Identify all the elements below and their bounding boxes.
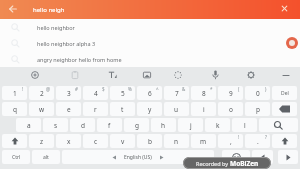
button[interactable]: j <box>178 118 203 132</box>
button[interactable]: 9 <box>218 86 243 100</box>
staticText: , <box>230 137 232 146</box>
staticText: x <box>67 137 71 146</box>
button[interactable]: p <box>245 102 270 116</box>
button[interactable]: g <box>124 118 149 132</box>
button[interactable]: Del <box>272 86 297 100</box>
button[interactable] <box>31 71 39 79</box>
button[interactable] <box>272 134 297 148</box>
staticText: hello neigh <box>33 6 65 14</box>
button[interactable] <box>259 118 298 132</box>
button[interactable] <box>71 71 79 79</box>
button[interactable]: o <box>218 102 243 116</box>
button[interactable]: , <box>218 134 243 148</box>
button[interactable]: alt <box>32 150 60 164</box>
button[interactable]: 8 <box>191 86 216 100</box>
staticText: $ <box>102 86 105 92</box>
button[interactable]: hello neighbor <box>0 19 300 35</box>
button[interactable]: hello neighbor alpha 3 <box>0 35 300 51</box>
button[interactable]: y <box>137 102 162 116</box>
button[interactable] <box>281 5 288 12</box>
button[interactable]: x <box>56 134 81 148</box>
staticText: 7 <box>175 89 179 98</box>
staticText: ( <box>238 86 240 92</box>
button[interactable]: 6 <box>137 86 162 100</box>
staticText: Recorded by <box>196 160 230 167</box>
staticText: d <box>81 121 85 130</box>
staticText: hello neighbor alpha 3 <box>37 40 96 47</box>
staticText: v <box>121 137 125 146</box>
staticText: hello neighbor <box>37 24 75 31</box>
button[interactable]: Ctrl <box>2 150 30 164</box>
button[interactable]: z <box>29 134 54 148</box>
staticText: 3 <box>67 89 71 98</box>
button[interactable] <box>212 70 219 80</box>
button[interactable]: t <box>110 102 135 116</box>
staticText: f <box>108 121 111 130</box>
button[interactable]: English (US) <box>62 150 214 164</box>
staticText: 6 <box>148 89 152 98</box>
button[interactable]: e <box>56 102 81 116</box>
staticText: alt <box>43 154 49 161</box>
button[interactable]: 2 <box>29 86 54 100</box>
button[interactable] <box>9 5 17 13</box>
button[interactable] <box>143 71 151 79</box>
staticText: ! <box>238 134 240 140</box>
button[interactable]: c <box>83 134 108 148</box>
button[interactable] <box>222 150 250 164</box>
staticText: Del <box>281 90 289 97</box>
staticText: s <box>54 121 58 130</box>
button[interactable]: 5 <box>110 86 135 100</box>
staticText: j <box>190 121 192 130</box>
button[interactable] <box>2 134 27 148</box>
button[interactable]: v <box>110 134 135 148</box>
button[interactable] <box>247 71 255 79</box>
button[interactable] <box>278 150 298 164</box>
staticText: r <box>94 105 97 114</box>
button[interactable]: n <box>164 134 189 148</box>
button[interactable]: r <box>83 102 108 116</box>
button[interactable]: w <box>29 102 54 116</box>
button[interactable] <box>174 71 182 79</box>
button[interactable] <box>272 102 297 116</box>
button[interactable]: 4 <box>83 86 108 100</box>
button[interactable]: b <box>137 134 162 148</box>
button[interactable]: 1 <box>2 86 27 100</box>
button[interactable]: s <box>43 118 68 132</box>
staticText: p <box>256 105 260 114</box>
button[interactable] <box>108 71 117 79</box>
staticText: 8 <box>202 89 206 98</box>
staticText: n <box>174 137 179 146</box>
staticText: * <box>210 86 213 92</box>
staticText: 9 <box>229 89 233 98</box>
button[interactable]: a <box>16 118 41 132</box>
button[interactable]: angry neighbor hello from home <box>0 51 300 67</box>
button[interactable]: m <box>191 134 216 148</box>
staticText: ^ <box>156 86 159 92</box>
button[interactable]: . <box>245 134 270 148</box>
staticText: 0 <box>256 89 260 98</box>
staticText: i <box>203 105 205 114</box>
staticText: k <box>216 121 220 130</box>
staticText: u <box>174 105 179 114</box>
staticText: y <box>148 105 152 114</box>
button[interactable]: q <box>2 102 27 116</box>
button[interactable]: d <box>70 118 95 132</box>
button[interactable] <box>252 150 273 164</box>
staticText: 5 <box>121 89 125 98</box>
button[interactable] <box>282 74 290 78</box>
staticText: ) <box>265 86 267 92</box>
button[interactable]: 7 <box>164 86 189 100</box>
staticText: a <box>27 121 31 130</box>
button[interactable]: k <box>205 118 230 132</box>
button[interactable]: l <box>232 118 257 132</box>
button[interactable]: 0 <box>245 86 270 100</box>
button[interactable]: h <box>151 118 176 132</box>
staticText: ? <box>265 134 267 140</box>
staticText: l <box>244 121 246 130</box>
button[interactable]: f <box>97 118 122 132</box>
staticText: . <box>257 137 259 146</box>
button[interactable]: i <box>191 102 216 116</box>
button[interactable]: 3 <box>56 86 81 100</box>
button[interactable]: u <box>164 102 189 116</box>
staticText: h <box>161 121 166 130</box>
